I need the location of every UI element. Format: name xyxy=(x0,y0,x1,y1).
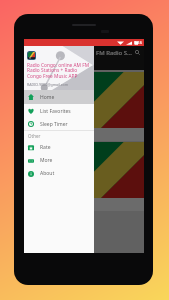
button[interactable]: List Favorites xyxy=(24,104,94,118)
button[interactable]: Search xyxy=(133,48,142,57)
button[interactable]: Sleep Timer xyxy=(24,118,94,130)
staticText: Rate xyxy=(40,144,51,151)
staticText: More xyxy=(40,157,53,164)
button[interactable]: More xyxy=(24,154,94,167)
staticText: Home xyxy=(40,94,55,101)
staticText: RADIO.9080@gmail.com xyxy=(27,82,69,87)
staticText: Radio Congo xyxy=(27,131,60,138)
staticText: List Favorites xyxy=(40,108,71,115)
staticText: Radio Congo: online AM FM Radio Stations… xyxy=(27,62,93,80)
staticText: Sleep Timer xyxy=(40,121,68,128)
staticText: Other xyxy=(28,133,41,139)
button[interactable]: Radio Congo xyxy=(24,142,144,211)
staticText: 0:46 xyxy=(134,40,142,45)
staticText: About xyxy=(40,170,55,177)
button[interactable]: About xyxy=(24,167,94,180)
button[interactable]: Radio Congo xyxy=(24,72,144,141)
button[interactable]: Home xyxy=(24,90,94,104)
staticText: Radio Congo: online AM FM Radio S... xyxy=(27,49,133,57)
staticText: THE MOST LISTENED xyxy=(27,61,80,68)
button[interactable]: Rate xyxy=(24,141,94,154)
